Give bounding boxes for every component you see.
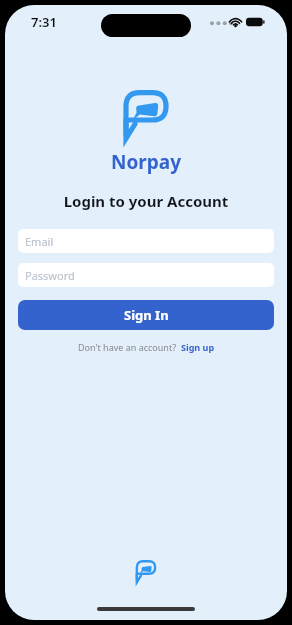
staticText: Login to your Account [5, 191, 287, 211]
staticText: Sign up [181, 341, 215, 353]
button[interactable]: Password [18, 263, 274, 287]
staticText: 7:31 [31, 13, 57, 31]
staticText: Don't have an account? [78, 341, 177, 353]
other: Dynamic Island [101, 14, 191, 37]
button[interactable]: Email [18, 229, 274, 253]
staticText: Password [25, 268, 75, 283]
staticText: Sign In [124, 306, 169, 324]
button[interactable]: Sign up [181, 341, 215, 353]
staticText: Norpay [5, 149, 287, 175]
button[interactable]: Sign In [18, 300, 274, 330]
staticText: Email [25, 234, 54, 249]
